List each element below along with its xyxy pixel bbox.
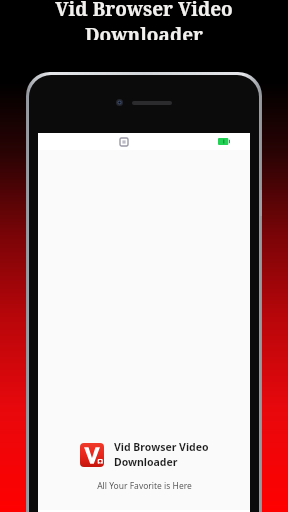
button[interactable]: Vid Browser Video Downloader logo: [80, 443, 104, 467]
staticText: Downloader: [114, 455, 178, 469]
button[interactable]: Vid Browser Video Downloader logo: [38, 440, 250, 492]
other: Recording indicator: [120, 138, 128, 146]
staticText: All Your Favorite is Here: [97, 480, 192, 492]
other: Battery: [218, 138, 230, 145]
staticText: Vid Browser Video: [114, 440, 209, 454]
staticText: Vid Browser Video Downloader: [0, 0, 288, 40]
